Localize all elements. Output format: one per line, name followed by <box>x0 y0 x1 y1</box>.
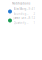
staticText: Notifications <box>12 2 30 5</box>
staticText: Quarterly report final version.pdf <box>13 21 28 25</box>
button[interactable]: Jamie Lee shared a file <box>5 16 36 25</box>
button[interactable]: Alex Morgan sent a message <box>5 7 36 16</box>
staticText: Jamie Lee shared a file <box>13 16 28 20</box>
staticText: 9:41 <box>28 7 35 11</box>
staticText: 1 <box>33 21 35 25</box>
staticText: Sounds good — see you tomorrow at <box>13 12 28 16</box>
staticText: 8:12 <box>28 16 35 20</box>
staticText: 2 <box>33 12 35 16</box>
staticText: Alex Morgan sent a message <box>13 7 28 11</box>
